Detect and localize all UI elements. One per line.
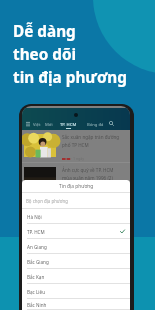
staticText: TP. HCM <box>60 122 77 128</box>
staticText: · 1 ngày <box>71 156 85 161</box>
staticText: Việt <box>33 122 41 128</box>
button[interactable]: Search <box>108 120 115 127</box>
staticText: Bạc Liêu <box>27 289 45 295</box>
staticText: Hà Nội <box>27 214 42 220</box>
button[interactable]: TP. HCM <box>22 224 130 239</box>
staticText: mùa xuân năm 1996 (2) <box>62 175 113 181</box>
staticText: Mới <box>45 122 53 128</box>
staticText: Bắc Kạn <box>27 274 45 280</box>
staticText: TP. HCM <box>27 229 45 235</box>
button[interactable]: Bắc Kạn <box>22 269 130 284</box>
button[interactable]: Menu <box>24 120 31 127</box>
staticText: Bộ chọn địa phương <box>26 198 68 204</box>
button[interactable]: Bóng đá <box>87 122 104 128</box>
staticText: Bắc Ninh <box>27 302 47 308</box>
staticText: An Giang <box>27 244 47 250</box>
button[interactable]: Bạc Liêu <box>22 284 130 299</box>
button[interactable]: Hà Nội <box>22 209 130 224</box>
button[interactable]: TP. HCM <box>60 122 77 128</box>
button[interactable]: Mới <box>45 122 53 128</box>
staticText: Sắc xuân ngập tràn đường <box>62 134 120 140</box>
staticText: Tin địa phương <box>59 183 94 190</box>
button[interactable]: Việt <box>33 122 41 128</box>
button[interactable]: Ảnh cực quý về TP. HCM <box>22 166 130 200</box>
staticText: · 1 ngày <box>71 189 85 194</box>
staticText: tin địa phương <box>13 67 127 88</box>
button[interactable]: Bắc Ninh <box>22 299 130 310</box>
staticText: theo dõi <box>13 44 77 65</box>
staticText: Ảnh cực quý về TP. HCM <box>62 167 114 173</box>
button[interactable]: Bắc Giang <box>22 254 130 269</box>
button[interactable]: Sắc xuân ngập tràn đường <box>22 133 130 167</box>
button[interactable]: An Giang <box>22 239 130 254</box>
staticText: Dễ dàng <box>13 21 76 42</box>
staticText: Bắc Giang <box>27 259 49 265</box>
staticText: phố TP HCM <box>62 142 89 148</box>
staticText: Bóng đá <box>87 122 104 128</box>
button[interactable]: Bộ chọn địa phương <box>22 193 130 208</box>
